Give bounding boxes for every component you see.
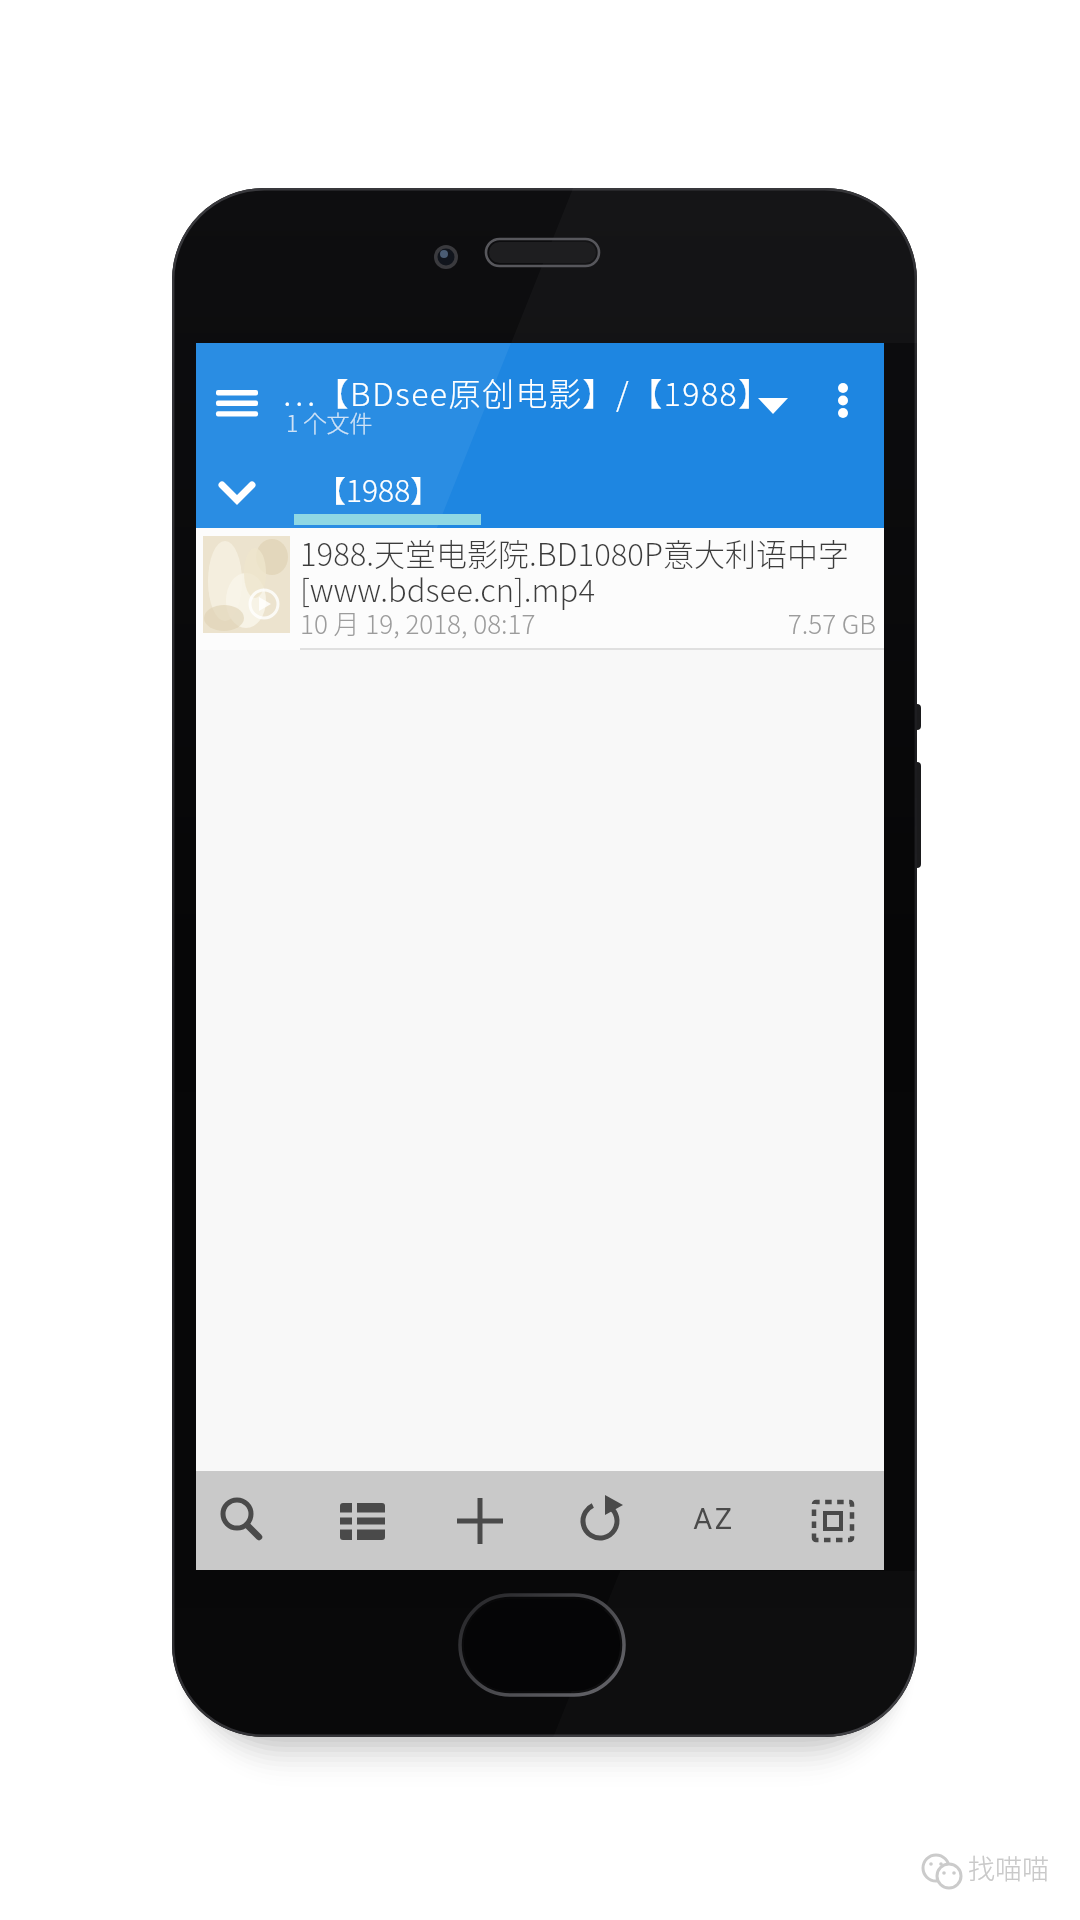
staticText: 7.57 GB bbox=[696, 604, 876, 1832]
staticText: [www.bdsee.cn].mp4 bbox=[300, 566, 595, 611]
staticText: 【1988】 bbox=[316, 467, 441, 510]
staticText: 1 个文件 bbox=[286, 405, 373, 438]
staticText: 1988.天堂电影院.BD1080P意大利语中字 bbox=[300, 530, 849, 575]
staticText: 10 月 19, 2018, 08:17 bbox=[300, 604, 536, 642]
staticText: …【BDsee原创电影】/【1988】 bbox=[282, 369, 772, 415]
staticText: 找喵喵 bbox=[968, 1848, 1049, 1887]
staticText: AZ bbox=[674, 1502, 754, 1920]
